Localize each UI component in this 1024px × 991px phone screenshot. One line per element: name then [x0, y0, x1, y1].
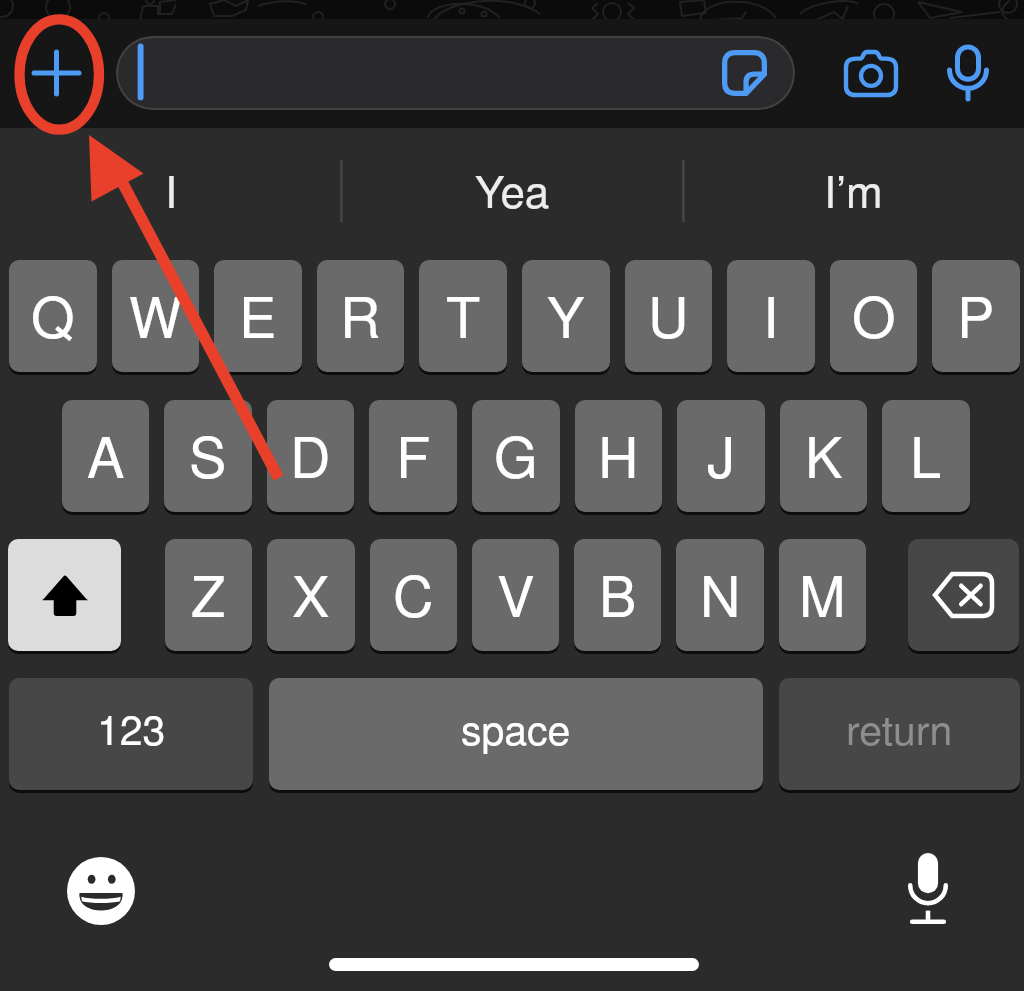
- staticText: I: [763, 274, 779, 354]
- button[interactable]: Z: [165, 539, 252, 651]
- button[interactable]: S: [164, 400, 252, 512]
- staticText: B: [599, 553, 637, 633]
- staticText: return: [846, 698, 953, 757]
- staticText: M: [799, 553, 846, 633]
- button[interactable]: Stickers: [714, 43, 774, 103]
- button[interactable]: Q: [9, 260, 97, 372]
- button[interactable]: Add attachment: [22, 38, 91, 107]
- button[interactable]: C: [370, 539, 457, 651]
- button[interactable]: W: [112, 260, 199, 372]
- button[interactable]: I: [0, 128, 342, 260]
- button[interactable]: D: [267, 400, 354, 512]
- staticText: P: [957, 274, 995, 354]
- button[interactable]: Stickers: [116, 36, 795, 110]
- staticText: I: [165, 157, 178, 220]
- staticText: A: [87, 414, 125, 494]
- button[interactable]: return: [779, 678, 1020, 790]
- button[interactable]: G: [472, 400, 560, 512]
- staticText: S: [189, 414, 227, 494]
- button[interactable]: K: [780, 400, 867, 512]
- staticText: W: [129, 274, 182, 354]
- button[interactable]: V: [472, 539, 559, 651]
- button[interactable]: O: [830, 260, 917, 372]
- staticText: T: [446, 274, 481, 354]
- button[interactable]: H: [575, 400, 662, 512]
- button[interactable]: Camera: [837, 39, 905, 107]
- button[interactable]: Emoji: [57, 847, 145, 935]
- staticText: D: [290, 414, 331, 494]
- button[interactable]: R: [317, 260, 404, 372]
- button[interactable]: Yea: [342, 128, 683, 260]
- staticText: E: [239, 274, 277, 354]
- button[interactable]: F: [369, 400, 457, 512]
- button[interactable]: I’m: [683, 128, 1024, 260]
- staticText: 123: [97, 698, 166, 757]
- button[interactable]: X: [267, 539, 355, 651]
- button[interactable]: Shift: [8, 539, 121, 651]
- button[interactable]: M: [779, 539, 866, 651]
- button[interactable]: P: [932, 260, 1020, 372]
- button[interactable]: space: [269, 678, 763, 790]
- staticText: G: [494, 414, 538, 494]
- staticText: space: [461, 698, 571, 757]
- button[interactable]: Dictation: [884, 845, 972, 933]
- staticText: K: [805, 414, 843, 494]
- staticText: N: [700, 553, 741, 633]
- button[interactable]: Backspace: [908, 539, 1019, 651]
- staticText: V: [497, 553, 535, 633]
- button[interactable]: B: [574, 539, 661, 651]
- button[interactable]: J: [677, 400, 765, 512]
- button[interactable]: N: [676, 539, 764, 651]
- staticText: H: [598, 414, 639, 494]
- staticText: L: [910, 414, 942, 494]
- button[interactable]: A: [62, 400, 149, 512]
- button[interactable]: I: [727, 260, 815, 372]
- staticText: Q: [31, 274, 75, 354]
- staticText: X: [292, 553, 330, 633]
- button[interactable]: 123: [9, 678, 253, 790]
- button[interactable]: U: [625, 260, 712, 372]
- staticText: U: [648, 274, 689, 354]
- staticText: F: [396, 414, 431, 494]
- button[interactable]: E: [214, 260, 302, 372]
- staticText: R: [340, 274, 381, 354]
- staticText: Y: [547, 274, 585, 354]
- staticText: C: [393, 553, 434, 633]
- button[interactable]: L: [882, 400, 970, 512]
- button[interactable]: Y: [522, 260, 610, 372]
- staticText: O: [852, 274, 896, 354]
- button[interactable]: T: [419, 260, 507, 372]
- button[interactable]: Voice message: [934, 39, 1002, 107]
- staticText: Yea: [475, 157, 550, 220]
- staticText: J: [707, 414, 735, 494]
- staticText: Z: [191, 553, 226, 633]
- staticText: I’m: [824, 157, 883, 220]
